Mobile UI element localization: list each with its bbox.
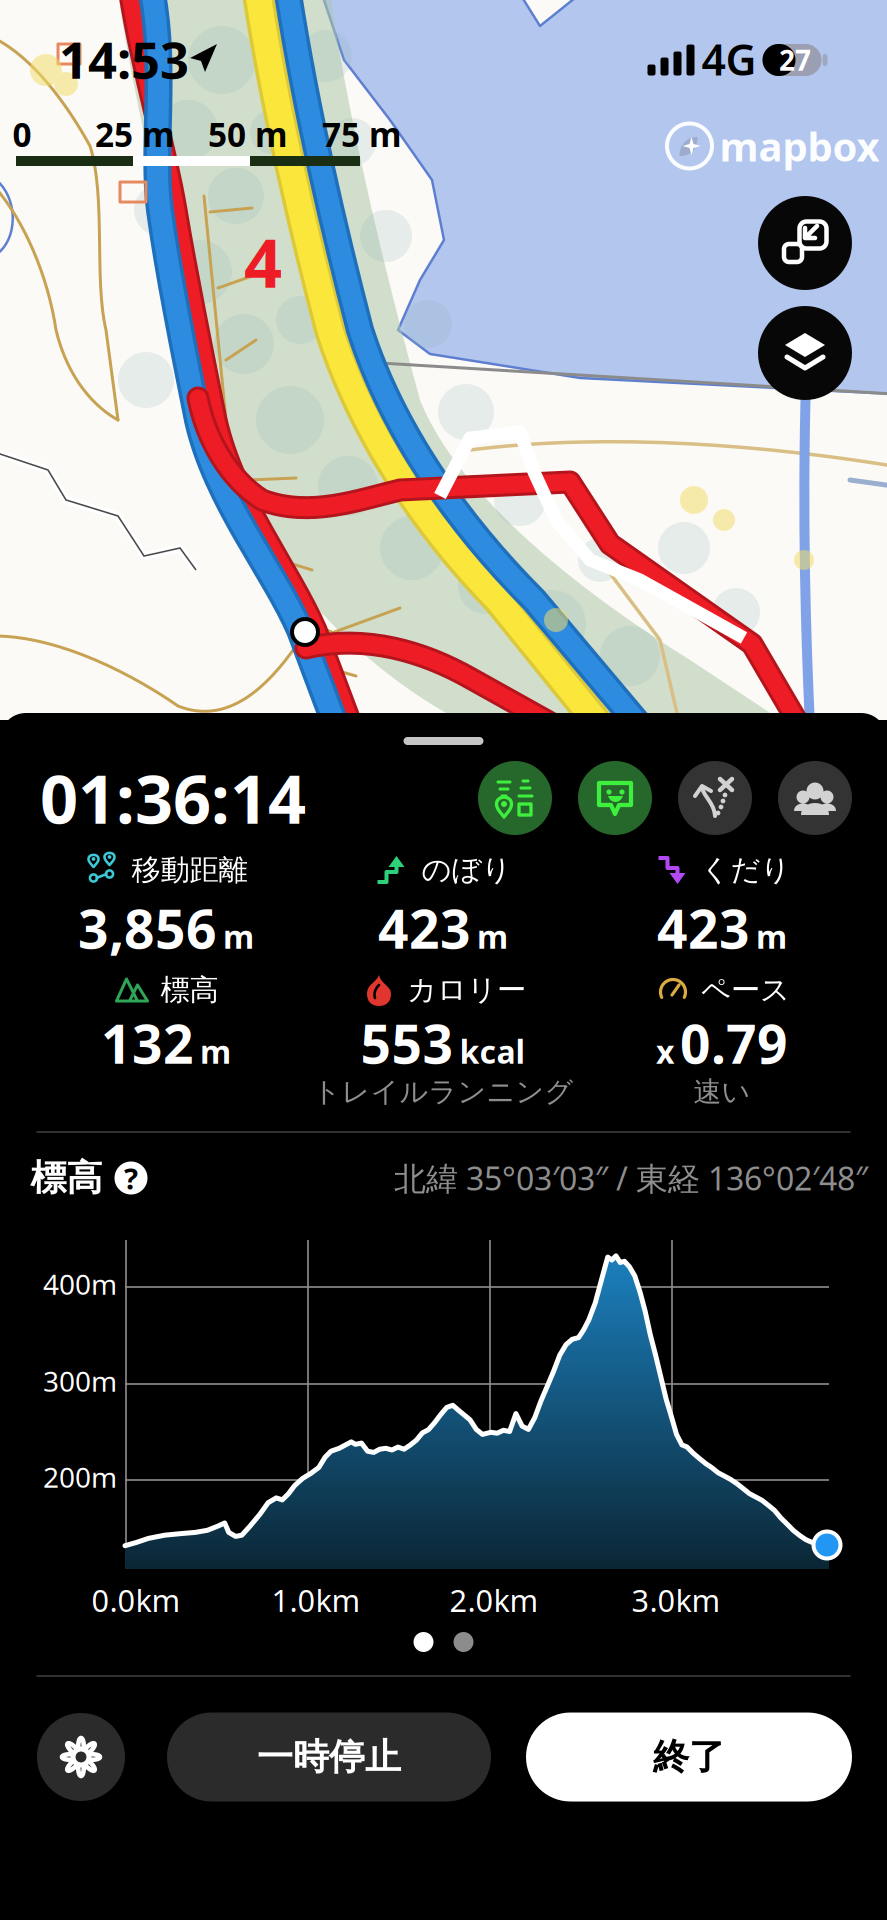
staticText: 終了 [653,1735,725,1779]
staticText: 4G [701,31,756,87]
staticText: 423 [378,893,471,963]
staticText: 標高 [160,972,218,1008]
staticText: ペース [701,972,790,1008]
staticText: m [223,915,254,957]
staticText: 300m [43,1362,117,1400]
staticText: ? [124,1158,138,1197]
staticText: 4 [244,218,282,306]
staticText: 3.0km [631,1580,720,1620]
staticText: 553 [360,1008,453,1078]
staticText: m [477,915,508,957]
staticText: m [756,915,787,957]
staticText: のぼり [421,852,511,888]
staticText: 25 m [95,112,175,156]
staticText: 0.0km [91,1580,180,1620]
staticText: 50 m [208,112,288,156]
button[interactable]: Route [678,761,752,835]
staticText: 一時停止 [257,1735,401,1779]
button[interactable]: Post a note [578,761,652,835]
staticText: 3,856 [78,893,217,963]
staticText: 01:36:14 [40,754,306,842]
staticText: 423 [657,893,750,963]
staticText: 北緯 35°03′03″ / 東経 136°02′48″ [394,1157,868,1199]
staticText: kcal [459,1030,525,1072]
staticText: トレイルランニング [312,1075,573,1109]
staticText: 標高 [30,1156,102,1200]
staticText: カロリー [407,972,526,1008]
staticText: x [656,1030,674,1072]
staticText: 速い [693,1075,750,1109]
staticText: m [200,1030,231,1072]
staticText: 75 m [322,112,402,156]
button[interactable]: 終了 [526,1712,852,1801]
staticText: 0 [12,112,31,156]
staticText: くだり [700,852,790,888]
button[interactable]: 一時停止 [167,1712,491,1801]
button[interactable]: Expand map [758,196,852,290]
staticText: mapbox [719,119,879,172]
staticText: 132 [101,1008,194,1078]
staticText: 1.0km [271,1580,360,1620]
button[interactable]: About elevation [114,1161,147,1194]
button[interactable]: Map layers [758,306,852,400]
staticText: 400m [43,1265,117,1303]
staticText: 14:53 [59,25,189,93]
button[interactable]: Waypoints [478,761,552,835]
staticText: 2.0km [449,1580,538,1620]
staticText: 27 [779,41,811,79]
button[interactable]: Members [778,761,852,835]
staticText: 200m [43,1458,117,1496]
staticText: 移動距離 [131,852,247,888]
button[interactable]: Settings [37,1713,125,1801]
staticText: 0.79 [680,1008,788,1078]
